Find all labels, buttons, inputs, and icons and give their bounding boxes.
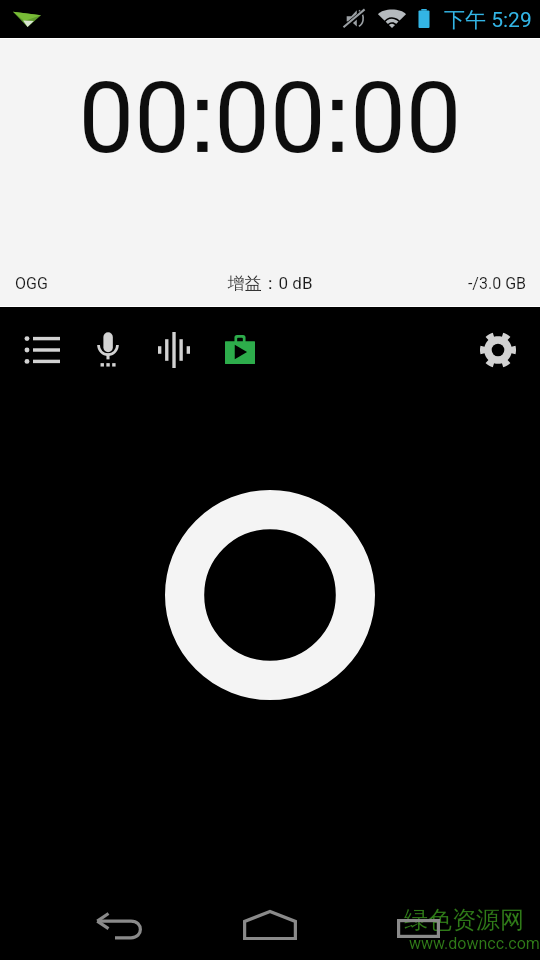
button[interactable]: Recordings list: [9, 307, 75, 393]
staticText: 增益：0 dB: [0, 273, 540, 294]
button[interactable]: Recent apps: [368, 888, 468, 960]
button[interactable]: Home: [220, 888, 320, 960]
button[interactable]: Waveform: [141, 307, 207, 393]
staticText: 下午 5:29: [444, 7, 532, 33]
button[interactable]: Record: [165, 490, 375, 700]
button[interactable]: Back: [70, 888, 170, 960]
button[interactable]: Settings: [465, 307, 531, 393]
staticText: www.downcc.com: [409, 934, 540, 953]
staticText: OGG: [15, 274, 48, 293]
button[interactable]: Play Store: [207, 307, 273, 393]
staticText: 绿色资源网: [404, 905, 524, 935]
staticText: -/3.0 GB: [0, 274, 526, 293]
button[interactable]: Microphone: [75, 307, 141, 393]
staticText: 00 00 00: [0, 60, 540, 176]
